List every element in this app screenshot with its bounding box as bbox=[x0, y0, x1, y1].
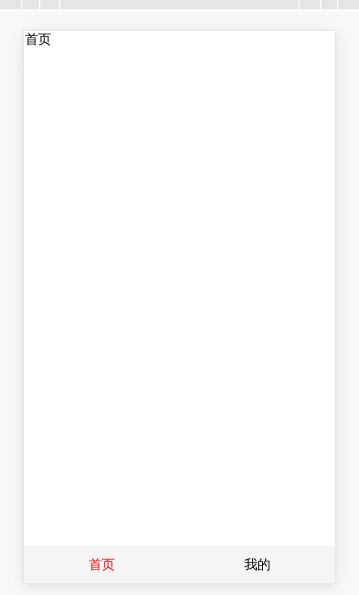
staticText: 我的 bbox=[244, 556, 270, 573]
button[interactable]: 我的 bbox=[179, 546, 335, 583]
staticText: 首页 bbox=[89, 556, 115, 573]
staticText: 首页 bbox=[25, 31, 51, 47]
button[interactable]: 首页 bbox=[24, 546, 179, 583]
